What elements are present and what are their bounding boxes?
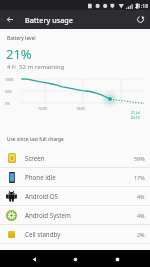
button[interactable]: Cell standby [0,225,150,243]
staticText: Use since last full charge [7,136,64,143]
button[interactable]: Android OS [0,187,150,205]
staticText: 50% [5,89,12,94]
button[interactable]: Refresh [131,10,150,29]
staticText: 17% [134,174,145,181]
staticText: 59% [134,155,145,162]
staticText: Screen [25,154,45,162]
staticText: 4 h 52 m remaining [7,62,65,70]
staticText: 21% [6,45,32,63]
staticText: Phone idle [25,173,56,181]
staticText: Android OS [25,192,58,200]
staticText: 2% [137,231,145,238]
button[interactable]: Home [67,251,83,267]
button[interactable]: Android System [0,206,150,224]
staticText: 4% [137,193,145,200]
button[interactable]: Screen [0,149,150,167]
staticText: 18:00 [76,106,85,111]
staticText: Android System [25,211,71,219]
button[interactable]: Back [26,251,42,267]
button[interactable]: Phone idle [0,168,150,186]
staticText: 21:18 [135,2,149,9]
staticText: 100% [5,77,14,82]
button[interactable]: Back [0,10,19,29]
staticText: 12:00 [38,106,47,111]
button[interactable]: Recents [109,251,125,267]
staticText: 02:10 [131,115,140,120]
staticText: Battery level [7,35,36,42]
staticText: Cell standby [25,230,61,238]
staticText: 21 Jul [131,110,140,115]
staticText: 4% [137,212,145,219]
staticText: Battery usage [25,15,73,25]
staticText: 0% [5,101,10,106]
